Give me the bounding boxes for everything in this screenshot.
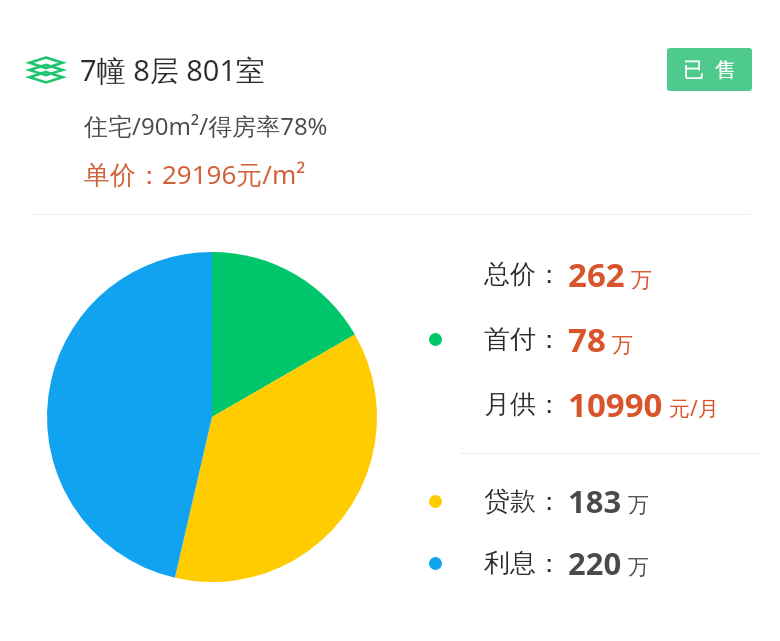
staticText: 万 <box>628 492 649 518</box>
staticText: 首付： <box>484 323 562 356</box>
staticText: 单价：29196元/m² <box>84 156 306 192</box>
staticText: 78 <box>568 317 606 362</box>
staticText: 220 <box>568 542 622 584</box>
other: 房款构成饼图 <box>47 252 377 582</box>
staticText: 月供： <box>484 388 562 421</box>
staticText: 总价： <box>484 258 562 291</box>
button[interactable]: 利息： <box>420 542 762 584</box>
button[interactable]: 首付： <box>420 317 762 362</box>
staticText: 万 <box>631 267 652 293</box>
staticText: 已 售 <box>683 55 736 84</box>
staticText: 万 <box>612 332 633 358</box>
staticText: 住宅/90m²/得房率78% <box>84 109 328 142</box>
staticText: 262 <box>568 252 625 297</box>
button[interactable]: 总价： <box>420 252 762 297</box>
staticText: 元/月 <box>669 394 719 423</box>
staticText: 183 <box>568 480 622 522</box>
staticText: 7幢 8层 801室 <box>80 50 266 90</box>
button[interactable]: 已 售 <box>667 48 752 91</box>
staticText: 10990 <box>568 382 663 427</box>
staticText: 贷款： <box>484 485 562 518</box>
staticText: 万 <box>628 554 649 580</box>
button[interactable]: 月供： <box>420 382 762 427</box>
button[interactable]: 贷款： <box>420 480 762 522</box>
other: 楼层图标 <box>28 52 64 88</box>
staticText: 利息： <box>484 547 562 580</box>
